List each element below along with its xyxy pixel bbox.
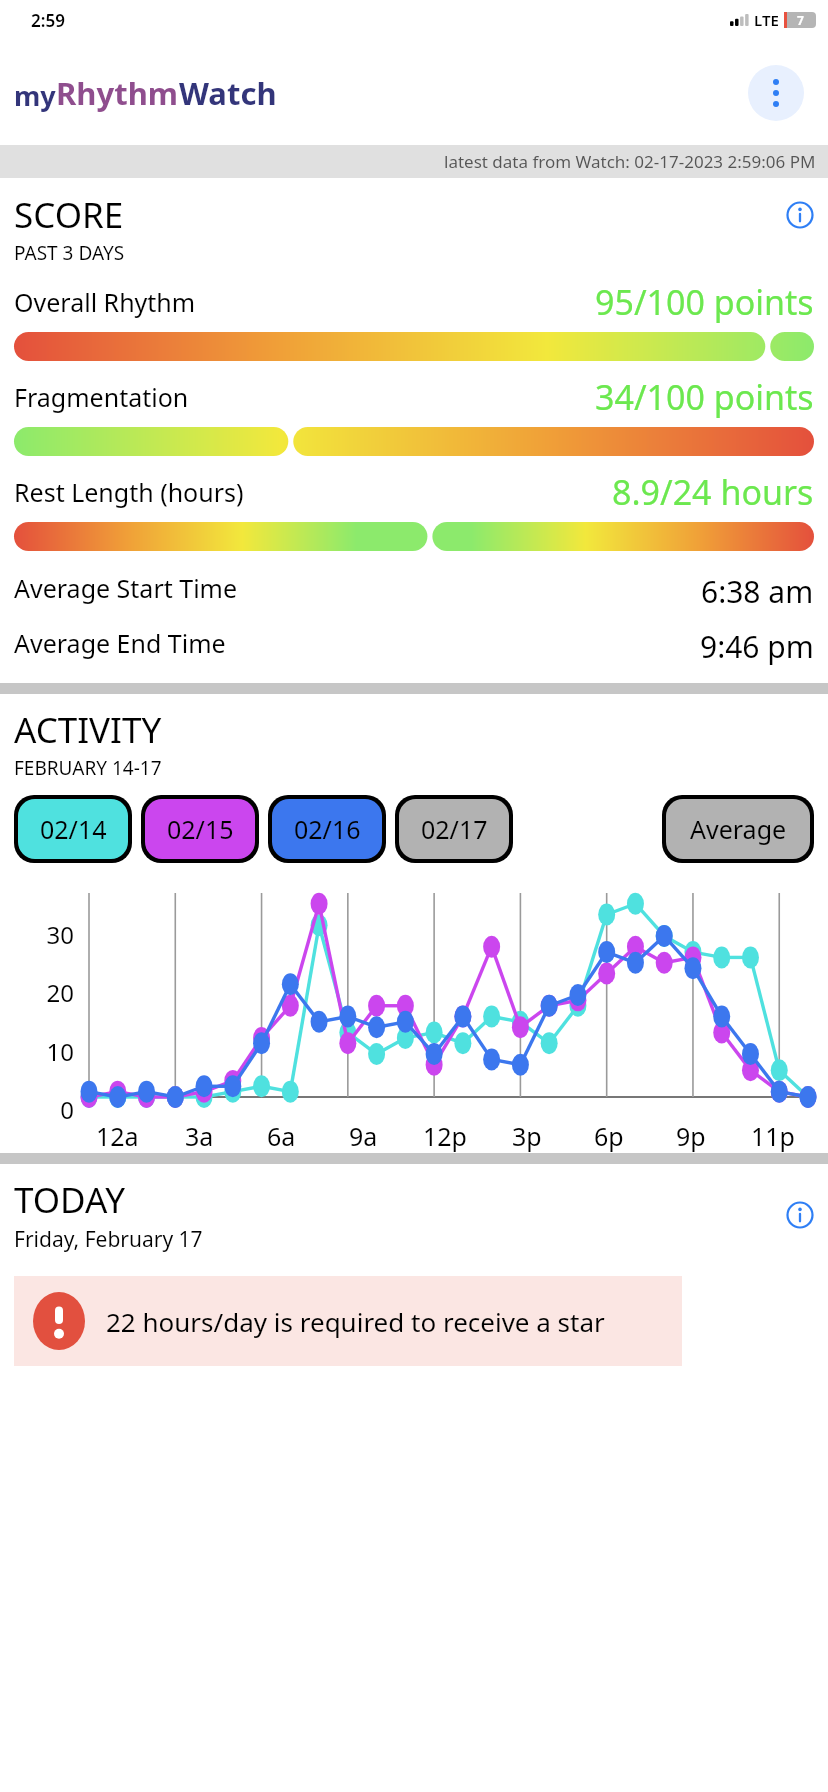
staticText: 0: [14, 1093, 74, 1126]
staticText: 6:38 am: [701, 571, 814, 612]
staticText: Average Start Time: [14, 571, 238, 605]
staticText: 9:46 pm: [700, 626, 814, 667]
button[interactable]: 02/16: [272, 799, 382, 859]
button[interactable]: Average: [666, 799, 810, 859]
staticText: Overall Rhythm: [14, 285, 196, 319]
staticText: Average: [690, 812, 787, 846]
staticText: Watch: [179, 72, 277, 114]
staticText: 3a: [185, 1119, 214, 1153]
button[interactable]: More options: [748, 65, 804, 121]
staticText: FEBRUARY 14-17: [14, 755, 162, 781]
button[interactable]: Score information: [786, 201, 814, 229]
staticText: 8.9/24 hours: [612, 469, 814, 515]
staticText: ACTIVITY: [14, 706, 162, 754]
staticText: my: [14, 77, 56, 114]
staticText: LTE: [754, 10, 779, 30]
staticText: 95/100 points: [595, 279, 814, 325]
button[interactable]: 02/15: [145, 799, 255, 859]
staticText: 2:59: [31, 9, 65, 32]
staticText: 20: [14, 976, 74, 1009]
staticText: Friday, February 17: [14, 1225, 203, 1254]
staticText: 02/14: [40, 812, 107, 846]
button[interactable]: 02/17: [399, 799, 509, 859]
staticText: 9p: [676, 1119, 706, 1153]
staticText: TODAY: [14, 1176, 126, 1224]
staticText: 6p: [594, 1119, 624, 1153]
staticText: 02/16: [294, 812, 361, 846]
staticText: 02/17: [421, 812, 488, 846]
staticText: latest data from Watch: 02-17-2023 2:59:…: [444, 150, 816, 173]
staticText: 7: [797, 12, 804, 28]
button[interactable]: Today information: [786, 1201, 814, 1229]
staticText: 9a: [349, 1119, 378, 1153]
staticText: 10: [14, 1035, 74, 1068]
staticText: 6a: [267, 1119, 296, 1153]
staticText: 12a: [96, 1119, 139, 1153]
staticText: Rhythm: [56, 72, 179, 114]
staticText: 02/15: [167, 812, 234, 846]
staticText: Fragmentation: [14, 380, 189, 414]
staticText: 11p: [751, 1119, 795, 1153]
button[interactable]: 02/14: [18, 799, 128, 859]
staticText: 12p: [423, 1119, 467, 1153]
staticText: Average End Time: [14, 626, 226, 660]
staticText: 22 hours/day is required to receive a st…: [106, 1304, 605, 1339]
staticText: 30: [14, 918, 74, 951]
staticText: 3p: [512, 1119, 542, 1153]
staticText: Rest Length (hours): [14, 475, 244, 509]
staticText: SCORE: [14, 191, 124, 239]
staticText: 34/100 points: [595, 374, 814, 420]
staticText: PAST 3 DAYS: [14, 240, 125, 266]
